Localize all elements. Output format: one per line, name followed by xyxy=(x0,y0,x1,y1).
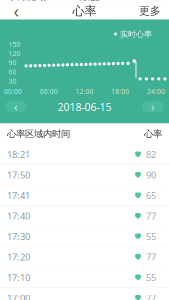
button[interactable]: Previous day xyxy=(5,101,27,112)
button[interactable]: 17:10 xyxy=(0,267,169,288)
staticText: ‹ xyxy=(14,99,18,115)
staticText: 77 xyxy=(146,292,156,300)
button[interactable]: 18:21 xyxy=(0,144,169,165)
staticText: 00:00 xyxy=(4,87,22,96)
staticText: ‹ xyxy=(13,0,18,22)
staticText: 实时心率 xyxy=(120,29,152,39)
staticText: 17:00 xyxy=(7,292,30,300)
staticText: 90 xyxy=(146,169,156,181)
staticText: 150 xyxy=(8,40,20,49)
staticText: 17:20 xyxy=(7,251,30,263)
staticText: 82 xyxy=(146,148,156,161)
staticText: 18:21 xyxy=(7,148,30,161)
staticText: 06:00 xyxy=(40,87,58,96)
staticText: 65 xyxy=(146,189,156,202)
staticText: 18:23 xyxy=(77,0,100,3)
staticText: 24:00 xyxy=(147,87,165,96)
staticText: 17:41 xyxy=(7,189,30,202)
button[interactable]: 17:40 xyxy=(0,206,169,226)
staticText: 90 xyxy=(8,58,16,67)
staticText: 60 xyxy=(8,67,16,76)
button[interactable]: 17:20 xyxy=(0,247,169,267)
button[interactable]: Back xyxy=(4,2,28,19)
staticText: 18:00 xyxy=(111,87,129,96)
staticText: 心率 xyxy=(72,4,96,18)
button[interactable]: 更多 xyxy=(135,2,165,19)
staticText: 17:30 xyxy=(7,230,30,243)
staticText: › xyxy=(151,99,155,115)
staticText: 77 xyxy=(146,210,156,222)
staticText: 17:40 xyxy=(7,210,30,222)
staticText: 120 xyxy=(8,49,20,58)
button[interactable]: 17:30 xyxy=(0,226,169,247)
button[interactable]: 17:00 xyxy=(0,288,169,300)
staticText: 2018-06-15 xyxy=(57,100,111,114)
staticText: 30 xyxy=(8,77,16,86)
staticText: 55 xyxy=(146,271,156,284)
staticText: 12:00 xyxy=(75,87,93,96)
staticText: 更多 xyxy=(139,4,161,17)
staticText: 55 xyxy=(146,230,156,243)
staticText: 中国移动 xyxy=(14,0,46,2)
staticText: 心率区域内时间 xyxy=(7,128,70,140)
button[interactable]: 17:50 xyxy=(0,165,169,185)
button[interactable]: 17:41 xyxy=(0,185,169,206)
staticText: 77 xyxy=(146,251,156,263)
button[interactable]: Next day xyxy=(142,101,164,112)
staticText: 17:10 xyxy=(7,271,30,284)
staticText: 17:50 xyxy=(7,169,30,181)
staticText: 心率 xyxy=(144,128,162,140)
